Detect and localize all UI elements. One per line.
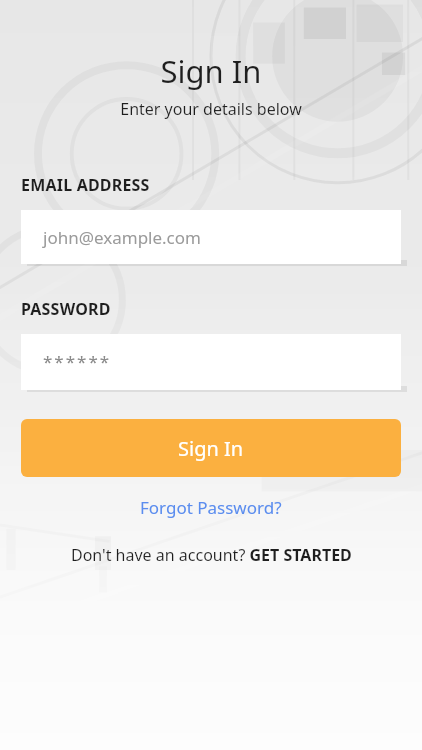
staticText: Forgot Password? — [140, 496, 282, 519]
staticText: Sign In — [0, 50, 422, 92]
button[interactable]: Don't have an account? GET STARTED — [63, 540, 360, 570]
staticText: PASSWORD — [21, 298, 111, 320]
staticText: ****** — [43, 350, 112, 373]
staticText: EMAIL ADDRESS — [21, 174, 150, 196]
staticText: Sign In — [178, 435, 244, 462]
button[interactable]: Forgot Password? — [130, 493, 292, 522]
button[interactable]: john@example.com — [21, 210, 401, 264]
staticText: Enter your details below — [0, 98, 422, 120]
staticText: Don't have an account? GET STARTED — [71, 544, 352, 566]
button[interactable]: ****** — [21, 334, 401, 390]
staticText: john@example.com — [43, 226, 201, 249]
button[interactable]: Sign In — [21, 419, 401, 477]
